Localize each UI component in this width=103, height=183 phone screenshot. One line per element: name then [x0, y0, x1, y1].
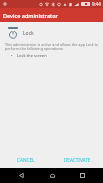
- staticText: CANCEL: [17, 157, 35, 163]
- staticText: DEACTIVATE: [64, 157, 91, 163]
- button[interactable]: CANCEL: [0, 151, 51, 168]
- button[interactable]: DEACTIVATE: [51, 151, 103, 168]
- button[interactable]: Back: [11, 168, 31, 183]
- staticText: Device administrator: [3, 12, 58, 19]
- staticText: • Lock the screen: [11, 53, 47, 59]
- button[interactable]: Home: [42, 168, 62, 183]
- staticText: This administrator is active and allows …: [5, 42, 99, 52]
- staticText: Lock: [23, 30, 34, 37]
- staticText: 9:44: [92, 1, 101, 7]
- button[interactable]: Recent apps: [72, 168, 92, 183]
